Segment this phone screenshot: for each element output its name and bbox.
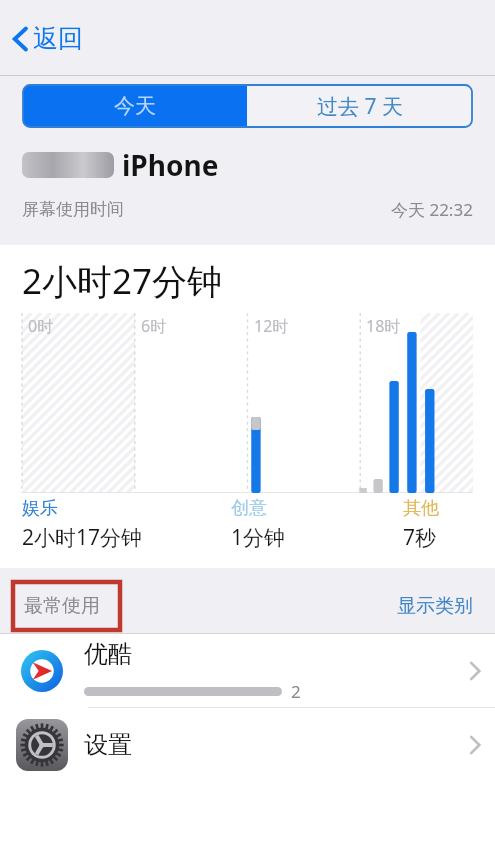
staticText: 显示类别 [397,594,473,618]
other: 查看 设置 使用详情 [469,734,481,756]
button[interactable]: 设置 [0,708,495,781]
staticText: 0时 [28,315,54,337]
other: 查看 优酷 使用详情 [469,660,481,682]
staticText: 娱乐 [22,497,58,520]
staticText: 今天 [114,93,156,119]
button[interactable]: 过去 7 天 [247,85,472,127]
staticText: 创意 [231,497,267,520]
staticText: 其他 [403,497,439,520]
staticText: 设置 [84,730,132,760]
staticText: 7秒 [403,523,437,552]
staticText: iPhone [122,146,219,184]
staticText: 过去 7 天 [317,92,403,121]
staticText: 优酷 [84,639,132,669]
staticText: 今天 22:32 [391,198,473,221]
staticText: 18时 [366,315,401,337]
button[interactable]: 返回 [0,15,99,62]
staticText: 2 [291,680,301,703]
button[interactable]: 显示类别 [375,586,495,626]
button[interactable]: 优酷 [0,634,495,707]
staticText: 6时 [141,315,167,337]
staticText: 返回 [33,23,83,54]
button[interactable]: 今天 [23,85,247,127]
staticText: 2小时27分钟 [22,257,223,305]
staticText: 屏幕使用时间 [22,199,124,220]
staticText: 1分钟 [231,523,286,552]
staticText: 12时 [254,315,289,337]
staticText: 最常使用 [24,594,100,618]
staticText: 2小时17分钟 [22,523,143,552]
